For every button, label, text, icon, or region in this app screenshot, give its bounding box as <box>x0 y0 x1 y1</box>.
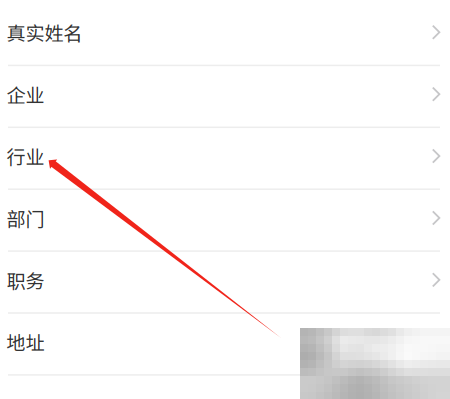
staticText: 企业 <box>7 80 45 108</box>
button[interactable]: 职务 <box>0 252 450 314</box>
button[interactable]: 企业 <box>0 66 450 128</box>
button[interactable]: 真实姓名 <box>0 4 450 66</box>
button[interactable]: 部门 <box>0 190 450 252</box>
staticText: 地址 <box>7 328 45 355</box>
button[interactable]: 行业 <box>0 128 450 190</box>
button[interactable]: 地址 <box>0 314 450 376</box>
staticText: 职务 <box>7 266 45 294</box>
staticText: 真实姓名 <box>7 18 83 46</box>
staticText: 行业 <box>7 142 45 170</box>
staticText: 部门 <box>7 204 45 232</box>
